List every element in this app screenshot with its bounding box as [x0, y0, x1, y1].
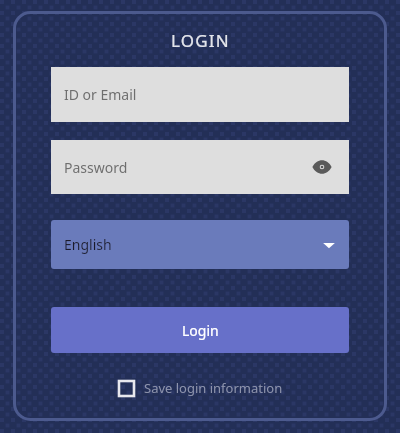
staticText: ID or Email [64, 85, 137, 104]
staticText: Login [182, 321, 219, 340]
button[interactable]: Password [51, 140, 349, 194]
staticText: Save login information [144, 379, 283, 397]
staticText: English [64, 235, 112, 254]
staticText: LOGIN [171, 29, 230, 52]
button[interactable]: English [51, 220, 349, 269]
button[interactable]: Save login information [112, 375, 289, 401]
button[interactable]: Login [51, 307, 349, 353]
staticText: Password [64, 158, 128, 177]
button[interactable]: ID or Email [51, 67, 349, 122]
button[interactable]: Show password [308, 153, 336, 181]
